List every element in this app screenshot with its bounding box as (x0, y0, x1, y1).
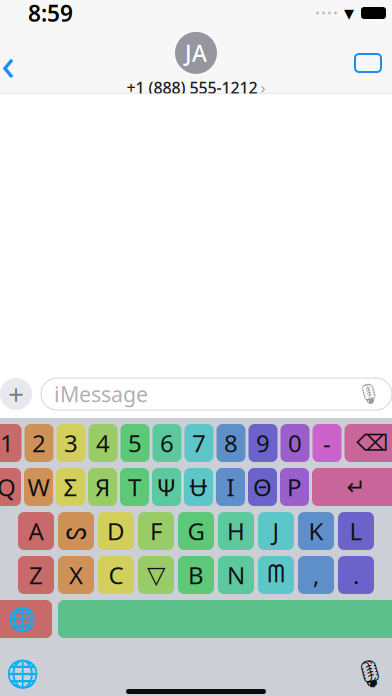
button[interactable]: Add attachment (0, 378, 32, 410)
button[interactable]: Σ (56, 468, 85, 506)
button[interactable]: Я (88, 468, 117, 506)
staticText: D (107, 515, 125, 547)
button[interactable]: Space (58, 600, 392, 638)
button[interactable]: X (58, 556, 94, 594)
button[interactable]: JA (126, 32, 265, 98)
staticText: 2 (32, 427, 46, 459)
button[interactable]: ᗰ (258, 556, 294, 594)
button[interactable]: 5 (120, 424, 149, 462)
button[interactable]: 2 (24, 424, 53, 462)
button[interactable]: Q (0, 468, 21, 506)
staticText: Ʉ (189, 471, 207, 503)
button[interactable]: G (178, 512, 214, 550)
button[interactable]: A (18, 512, 54, 550)
staticText: iMessage (54, 380, 148, 408)
button[interactable]: K (298, 512, 334, 550)
staticText: 0 (288, 427, 302, 459)
staticText: 1 (0, 427, 14, 459)
staticText: › (260, 77, 265, 98)
staticText: +1 (888) 555-1212 (126, 77, 257, 98)
staticText: 🎙 (353, 659, 387, 689)
staticText: - (323, 427, 331, 459)
button[interactable]: - (312, 424, 341, 462)
staticText: . (353, 559, 359, 591)
button[interactable]: Back (0, 41, 30, 85)
staticText: 🌐 (8, 606, 36, 632)
button[interactable]: 4 (88, 424, 117, 462)
button[interactable]: Ψ (152, 468, 181, 506)
button[interactable]: iMessage (41, 378, 392, 410)
staticText: ᔕ (65, 517, 86, 545)
staticText: T (128, 471, 141, 503)
button[interactable]: 0 (280, 424, 309, 462)
button[interactable]: Z (18, 556, 54, 594)
button[interactable]: Ρ (280, 468, 309, 506)
button[interactable]: 8 (216, 424, 245, 462)
button[interactable]: 7 (184, 424, 213, 462)
button[interactable]: N (218, 556, 254, 594)
staticText: 🌐 (5, 659, 38, 689)
staticText: ᗰ (267, 563, 284, 587)
button[interactable]: Dictation (348, 654, 392, 694)
button[interactable]: ⌫ (344, 424, 392, 462)
button[interactable]: F (138, 512, 174, 550)
button[interactable]: Θ (248, 468, 277, 506)
staticText: Σ (63, 471, 77, 503)
staticText: X (69, 559, 83, 591)
staticText: ‹ (1, 33, 15, 93)
button[interactable]: 6 (152, 424, 181, 462)
staticText: 3 (64, 427, 78, 459)
button[interactable]: Switch keyboard (0, 600, 52, 638)
button[interactable]: D (98, 512, 134, 550)
staticText: H (227, 515, 245, 547)
staticText: ↵ (346, 474, 365, 500)
button[interactable]: FaceTime (346, 41, 390, 85)
staticText: B (188, 559, 204, 591)
staticText: G (187, 515, 204, 547)
button[interactable]: C (98, 556, 134, 594)
staticText: , (313, 559, 319, 591)
button[interactable]: I (216, 468, 245, 506)
staticText: 🎙 (356, 383, 381, 405)
staticText: W (27, 471, 49, 503)
staticText: C (108, 559, 123, 591)
staticText: ▽ (147, 561, 165, 589)
staticText: Z (29, 559, 43, 591)
staticText: 5 (128, 427, 142, 459)
staticText: L (349, 515, 362, 547)
staticText: 6 (160, 427, 174, 459)
staticText: 8:59 (28, 0, 73, 28)
staticText: Ψ (156, 471, 176, 503)
button[interactable]: 9 (248, 424, 277, 462)
staticText: 8 (224, 427, 238, 459)
button[interactable]: H (218, 512, 254, 550)
staticText: A (28, 515, 43, 547)
button[interactable]: 1 (0, 424, 21, 462)
button[interactable]: , (298, 556, 334, 594)
staticText: I (226, 471, 234, 503)
button[interactable]: ᔕ (58, 512, 94, 550)
staticText: N (227, 559, 245, 591)
staticText: K (308, 515, 323, 547)
staticText: Ρ (287, 471, 302, 503)
staticText: 7 (192, 427, 206, 459)
button[interactable]: 3 (56, 424, 85, 462)
staticText: Q (0, 471, 16, 503)
staticText: Θ (253, 471, 272, 503)
button[interactable]: W (24, 468, 53, 506)
staticText: + (8, 375, 24, 413)
staticText: Я (95, 471, 110, 503)
staticText: F (150, 515, 162, 547)
staticText: 9 (256, 427, 270, 459)
button[interactable]: J (258, 512, 294, 550)
button[interactable]: Globe (0, 654, 44, 694)
button[interactable]: ↵ (312, 468, 392, 506)
button[interactable]: L (338, 512, 374, 550)
staticText: ⌫ (356, 430, 388, 456)
button[interactable]: ▽ (138, 556, 174, 594)
button[interactable]: B (178, 556, 214, 594)
button[interactable]: T (120, 468, 149, 506)
staticText: J (272, 515, 279, 547)
button[interactable]: Ʉ (184, 468, 213, 506)
button[interactable]: . (338, 556, 374, 594)
